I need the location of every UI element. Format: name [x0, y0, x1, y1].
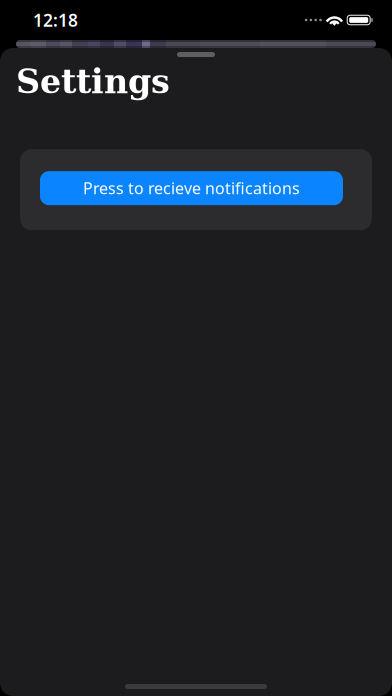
button[interactable]: Press to recieve notifications — [40, 171, 343, 205]
staticText: Press to recieve notifications — [83, 177, 300, 199]
staticText: Settings — [16, 62, 170, 101]
staticText: 12:18 — [33, 8, 78, 31]
